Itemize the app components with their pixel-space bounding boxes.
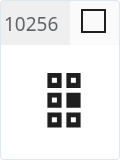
- staticText: 10256: [4, 11, 59, 37]
- button[interactable]: Select: [81, 9, 106, 33]
- button[interactable]: 10256: [0, 0, 70, 45]
